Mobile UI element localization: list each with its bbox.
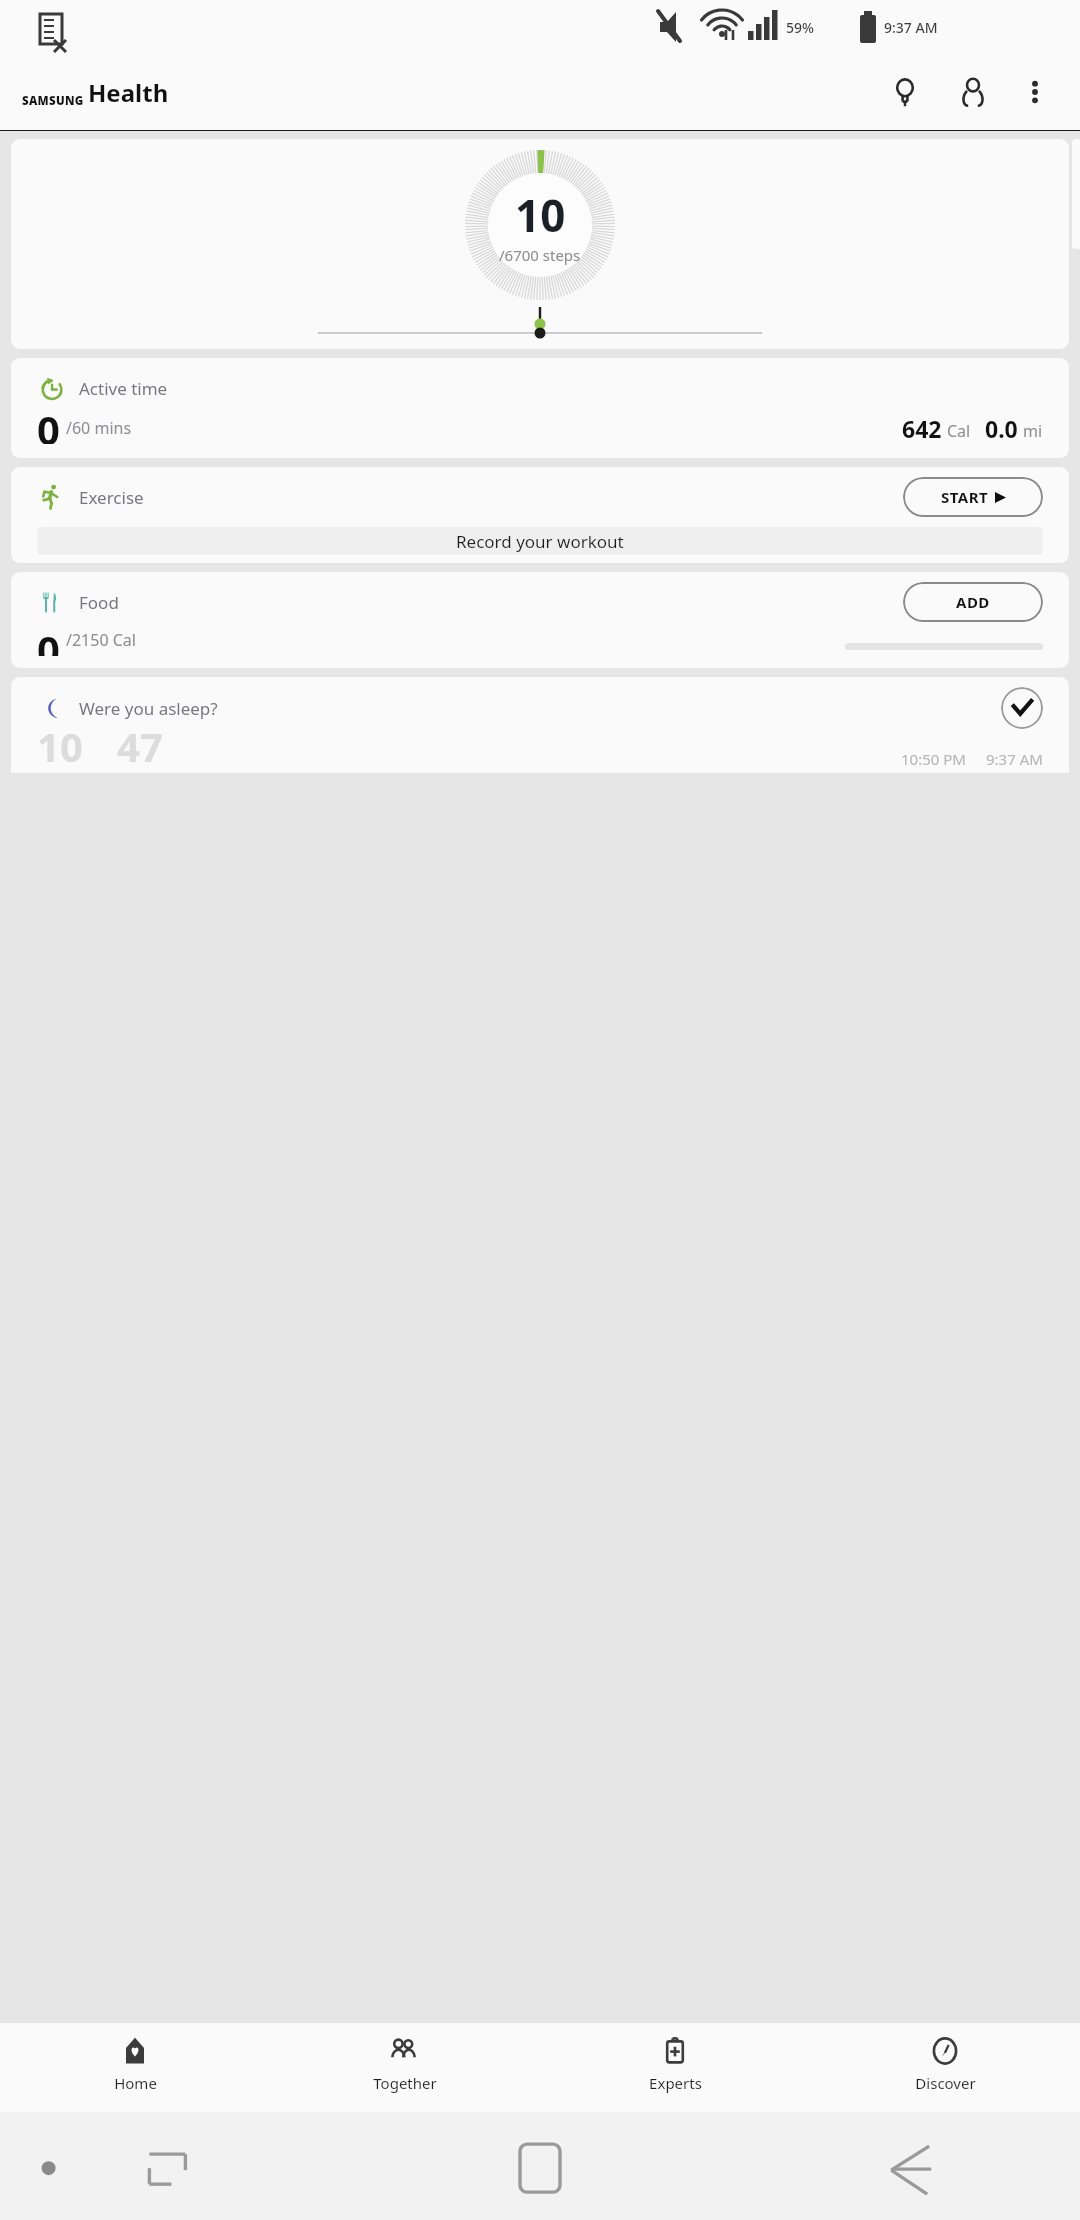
staticText: Discover xyxy=(915,2073,976,2093)
button[interactable]: ADD xyxy=(903,582,1043,622)
button[interactable]: Tips xyxy=(882,69,928,115)
button[interactable]: Experts xyxy=(540,2023,810,2112)
staticText: START xyxy=(941,487,989,507)
staticText: Active time xyxy=(79,377,168,400)
button[interactable]: More options xyxy=(1012,69,1058,115)
button[interactable]: Profile xyxy=(950,69,996,115)
staticText: Record your workout xyxy=(456,530,624,553)
staticText: mi xyxy=(1023,420,1043,442)
staticText: Together xyxy=(373,2073,437,2093)
button[interactable]: 10 xyxy=(11,139,1069,349)
button[interactable]: Active time xyxy=(11,358,1069,458)
staticText: 9:37 AM xyxy=(986,749,1043,769)
button[interactable]: Discover xyxy=(810,2023,1080,2112)
button[interactable]: Home xyxy=(0,2023,270,2112)
staticText: 10 xyxy=(515,185,566,245)
button[interactable]: Together xyxy=(270,2023,540,2112)
staticText: Food xyxy=(79,591,119,614)
button[interactable]: Record your workout xyxy=(37,527,1043,555)
button[interactable]: Were you asleep? xyxy=(11,677,1069,773)
staticText: ADD xyxy=(956,592,990,612)
staticText: /2150 Cal xyxy=(66,629,136,651)
staticText: 642 xyxy=(902,413,942,444)
staticText: 0 xyxy=(37,402,60,444)
staticText: 0 xyxy=(37,622,60,656)
staticText: Experts xyxy=(649,2073,702,2093)
staticText: Exercise xyxy=(79,486,144,509)
button[interactable]: Food xyxy=(11,572,1069,668)
button[interactable]: Confirm sleep xyxy=(1001,687,1043,729)
staticText: /6700 steps xyxy=(499,245,581,265)
staticText: Home xyxy=(114,2073,157,2093)
button[interactable]: START xyxy=(903,477,1043,517)
staticText: Cal xyxy=(947,420,971,442)
staticText: SAMSUNG xyxy=(22,93,84,109)
staticText: 59% xyxy=(786,18,814,37)
staticText: 0.0 xyxy=(985,413,1018,444)
staticText: /60 mins xyxy=(66,417,132,439)
staticText: 9:37 AM xyxy=(884,18,938,37)
staticText: Were you asleep? xyxy=(79,697,218,720)
button[interactable]: Exercise xyxy=(11,467,1069,563)
staticText: 10 xyxy=(37,719,83,773)
staticText: Health xyxy=(88,76,169,109)
staticText: 47 xyxy=(117,719,163,773)
staticText: 10:50 PM xyxy=(901,749,966,769)
